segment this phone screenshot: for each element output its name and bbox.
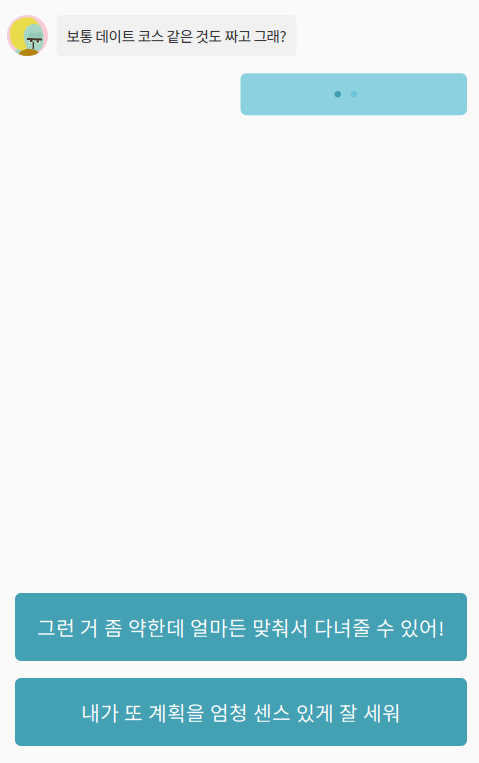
staticText: 그런 거 좀 약한데 얼마든 맞춰서 다녀줄 수 있어! [37,612,445,642]
button[interactable]: Character profile [7,15,48,56]
staticText: 보통 데이트 코스 같은 것도 짜고 그래? [66,25,286,46]
button[interactable]: 그런 거 좀 약한데 얼마든 맞춰서 다녀줄 수 있어! [15,593,467,661]
staticText: 내가 또 계획을 엄청 센스 있게 잘 세워 [81,697,401,727]
button[interactable]: 내가 또 계획을 엄청 센스 있게 잘 세워 [15,678,467,746]
